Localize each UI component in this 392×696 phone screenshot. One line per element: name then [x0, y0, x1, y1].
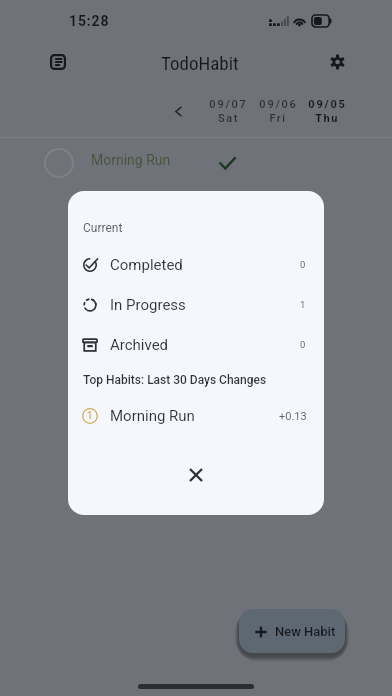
staticText: Top Habits: Last 30 Days Changes — [83, 373, 267, 387]
staticText: In Progress — [110, 296, 186, 314]
staticText: 15:28 — [69, 13, 110, 29]
button[interactable]: 09/05 — [300, 98, 354, 125]
staticText: 09/07 — [209, 98, 248, 111]
button[interactable]: New Habit — [239, 609, 345, 653]
staticText: +0.13 — [279, 410, 307, 423]
button[interactable]: Morning Run — [0, 138, 392, 188]
staticText: 09/06 — [259, 98, 298, 111]
button[interactable]: 09/07 — [201, 98, 255, 125]
button[interactable]: 09/06 — [251, 98, 305, 125]
staticText: 1 — [300, 299, 306, 310]
button[interactable]: Archived — [68, 330, 324, 360]
button[interactable]: Menu — [40, 44, 76, 80]
button[interactable]: In Progress — [68, 290, 324, 320]
button[interactable]: 1 — [68, 401, 324, 431]
staticText: 1 — [87, 410, 93, 422]
staticText: 09/05 — [308, 98, 347, 111]
staticText: Fri — [269, 112, 287, 125]
staticText: Current — [83, 221, 123, 235]
staticText: New Habit — [275, 624, 336, 639]
staticText: Thu — [315, 112, 339, 125]
staticText: 0 — [300, 259, 306, 270]
staticText: Archived — [110, 336, 169, 354]
staticText: Morning Run — [91, 152, 171, 168]
staticText: 0 — [300, 339, 306, 350]
staticText: TodoHabit — [161, 52, 239, 74]
button[interactable]: Close — [180, 459, 212, 491]
button[interactable]: Completed — [68, 250, 324, 280]
staticText: Sat — [218, 112, 239, 125]
button[interactable]: Settings — [319, 44, 355, 80]
staticText: Completed — [110, 256, 183, 274]
button[interactable]: Previous day — [166, 99, 190, 123]
staticText: Morning Run — [110, 407, 195, 425]
